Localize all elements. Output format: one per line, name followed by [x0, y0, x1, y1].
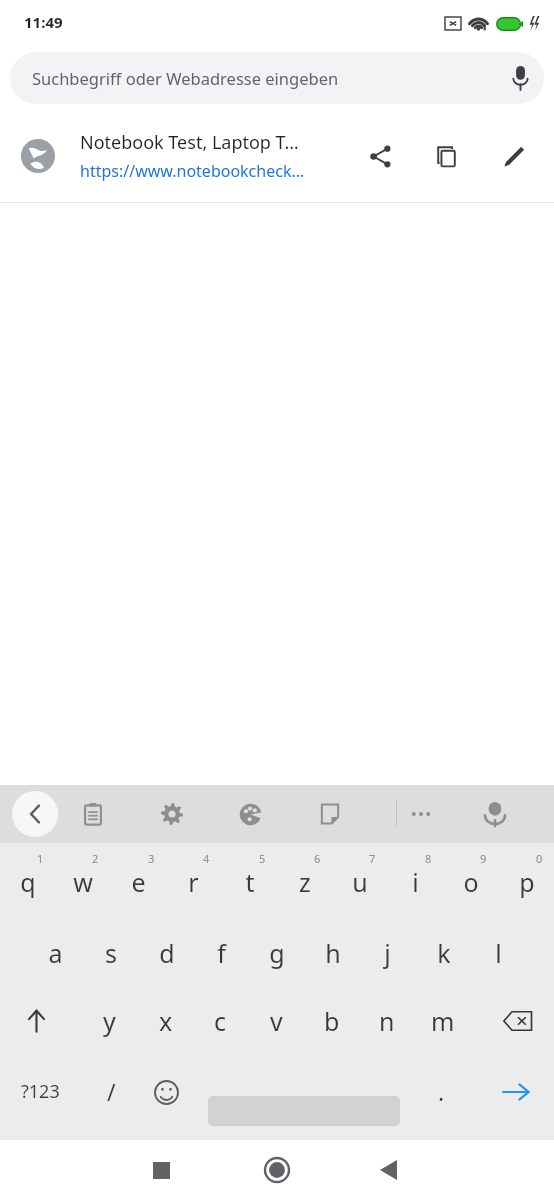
button[interactable]: Voice input — [472, 791, 518, 837]
staticText: u — [352, 865, 368, 899]
staticText: e — [131, 865, 146, 899]
staticText: n — [379, 1004, 395, 1038]
staticText: 9 — [480, 851, 487, 866]
staticText: 8 — [425, 851, 432, 866]
staticText: l — [495, 936, 502, 970]
staticText: https://www.notebookcheck… — [80, 160, 305, 182]
button[interactable]: n — [359, 985, 414, 1056]
button[interactable]: . — [418, 1056, 464, 1127]
staticText: t — [245, 865, 255, 899]
staticText: Notebook Test, Laptop T… — [80, 130, 299, 155]
staticText: b — [324, 1004, 340, 1038]
button[interactable]: a — [28, 914, 83, 985]
button[interactable]: z — [277, 843, 332, 914]
staticText: v — [270, 1004, 283, 1038]
staticText: i — [412, 865, 419, 899]
button[interactable]: b — [304, 985, 359, 1056]
staticText: p — [519, 865, 535, 899]
button[interactable]: y — [82, 985, 137, 1056]
button[interactable]: p — [499, 843, 554, 914]
button[interactable]: Emoji — [142, 1068, 190, 1116]
button[interactable]: Edit — [490, 132, 538, 180]
staticText: r — [188, 865, 199, 899]
button[interactable]: Home — [253, 1146, 301, 1194]
staticText: s — [105, 936, 117, 970]
staticText: o — [463, 865, 479, 899]
staticText: g — [269, 936, 285, 970]
button[interactable]: t — [222, 843, 277, 914]
button[interactable]: i — [388, 843, 443, 914]
button[interactable]: Theme — [228, 791, 274, 837]
staticText: a — [48, 936, 63, 970]
staticText: ?123 — [21, 1079, 60, 1104]
button[interactable]: r — [166, 843, 221, 914]
staticText: 7 — [369, 851, 376, 866]
staticText: h — [325, 936, 341, 970]
button[interactable]: e — [111, 843, 166, 914]
button[interactable]: l — [471, 914, 526, 985]
staticText: 11:49 — [24, 12, 63, 32]
staticText: j — [384, 936, 391, 970]
button[interactable]: m — [415, 985, 470, 1056]
button[interactable]: Settings — [149, 791, 195, 837]
button[interactable]: w — [55, 843, 110, 914]
button[interactable]: Clipboard — [70, 791, 116, 837]
staticText: . — [438, 1076, 445, 1107]
button[interactable]: Shift — [0, 985, 72, 1056]
button[interactable]: f — [194, 914, 249, 985]
button[interactable]: v — [249, 985, 304, 1056]
button[interactable]: s — [83, 914, 138, 985]
button[interactable]: x — [138, 985, 193, 1056]
staticText: y — [103, 1004, 116, 1038]
staticText: 0 — [536, 851, 543, 866]
staticText: w — [73, 865, 93, 899]
staticText: k — [437, 936, 451, 970]
button[interactable]: Voice search — [496, 54, 544, 102]
button[interactable]: g — [249, 914, 304, 985]
button[interactable]: Stickers — [307, 791, 353, 837]
staticText: / — [107, 1076, 116, 1107]
staticText: 6 — [314, 851, 321, 866]
staticText: 3 — [148, 851, 155, 866]
button[interactable]: d — [139, 914, 194, 985]
button[interactable]: Recent apps — [137, 1146, 185, 1194]
staticText: 5 — [259, 851, 266, 866]
staticText: f — [217, 936, 226, 970]
button[interactable]: k — [416, 914, 471, 985]
staticText: z — [299, 865, 311, 899]
button[interactable]: h — [305, 914, 360, 985]
staticText: m — [431, 1004, 455, 1038]
staticText: 2 — [92, 851, 99, 866]
button[interactable]: j — [360, 914, 415, 985]
button[interactable]: Suchbegriff oder Webadresse eingeben — [10, 52, 544, 104]
button[interactable]: Back — [364, 1146, 412, 1194]
button[interactable]: Go — [488, 1064, 544, 1120]
button[interactable]: q — [0, 843, 55, 914]
staticText: q — [20, 865, 36, 899]
staticText: x — [159, 1004, 173, 1038]
staticText: c — [214, 1004, 227, 1038]
staticText: 1 — [37, 851, 44, 866]
button[interactable]: Backspace — [482, 985, 554, 1056]
button[interactable]: Notebook Test, Laptop T… — [0, 110, 554, 202]
staticText: 4 — [203, 851, 210, 866]
button[interactable]: Copy — [422, 132, 470, 180]
button[interactable]: c — [193, 985, 248, 1056]
button[interactable]: ?123 — [4, 1056, 76, 1127]
button[interactable]: o — [443, 843, 498, 914]
button[interactable]: u — [332, 843, 387, 914]
button[interactable]: Back — [12, 791, 58, 837]
button[interactable]: / — [86, 1056, 136, 1127]
staticText: d — [159, 936, 175, 970]
staticText: Suchbegriff oder Webadresse eingeben — [32, 67, 339, 89]
button[interactable]: More options — [398, 791, 444, 837]
button[interactable]: Share — [356, 132, 404, 180]
